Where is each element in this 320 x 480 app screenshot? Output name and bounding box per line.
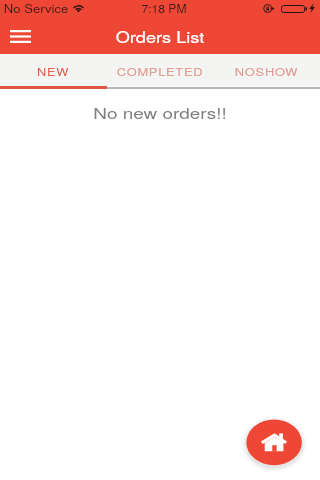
- button[interactable]: NOSHOW: [213, 54, 320, 86]
- button[interactable]: NEW: [0, 54, 106, 86]
- staticText: No Service: [3, 0, 69, 16]
- staticText: Orders List: [115, 25, 204, 47]
- staticText: COMPLETED: [117, 63, 203, 79]
- button[interactable]: COMPLETED: [106, 54, 213, 86]
- button[interactable]: Home: [240, 413, 308, 471]
- staticText: 7:18 PM: [141, 0, 187, 16]
- staticText: No new orders!!: [93, 102, 227, 124]
- staticText: NOSHOW: [234, 63, 299, 79]
- button[interactable]: Open navigation menu: [4, 23, 37, 49]
- staticText: NEW: [37, 63, 69, 79]
